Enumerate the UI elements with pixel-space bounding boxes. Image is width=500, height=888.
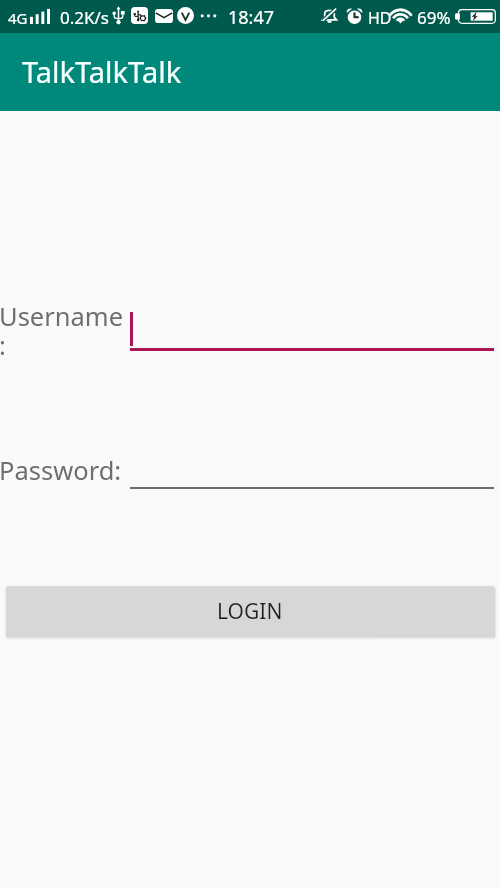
button[interactable]: Password input field <box>130 452 494 489</box>
staticText: HD <box>368 7 392 29</box>
button[interactable]: LOGIN <box>6 586 494 637</box>
staticText: Password: <box>0 453 122 488</box>
button[interactable]: Username input field <box>130 310 494 351</box>
staticText: 4G <box>8 8 28 28</box>
staticText: Username : <box>0 299 130 362</box>
staticText: TalkTalkTalk <box>22 52 182 91</box>
staticText: LOGIN <box>217 597 283 626</box>
staticText: 0.2K/s <box>60 6 109 29</box>
staticText: 69% <box>417 6 451 29</box>
staticText: 18:47 <box>228 5 275 30</box>
